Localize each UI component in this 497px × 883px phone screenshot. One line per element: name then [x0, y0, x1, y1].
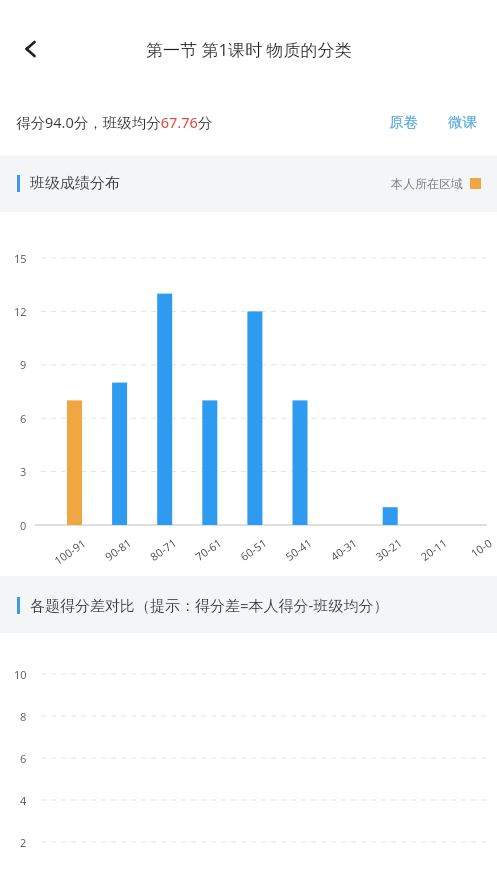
button[interactable]: Back: [8, 26, 54, 72]
staticText: 班级成绩分布: [30, 174, 120, 193]
staticText: 本人所在区域: [391, 176, 463, 191]
staticText: 微课: [448, 113, 477, 131]
staticText: 第一节 第1课时 物质的分类: [146, 38, 352, 61]
button[interactable]: 各题得分差对比（提示：得分差=本人得分-班级均分）: [0, 576, 497, 633]
button[interactable]: 微课: [444, 109, 481, 135]
button[interactable]: 班级成绩分布: [0, 155, 497, 212]
button[interactable]: 原卷: [385, 109, 422, 135]
staticText: 原卷: [389, 113, 418, 131]
staticText: 得分94.0分，班级均分67.76分: [16, 112, 213, 132]
staticText: 各题得分差对比（提示：得分差=本人得分-班级均分）: [30, 595, 389, 615]
